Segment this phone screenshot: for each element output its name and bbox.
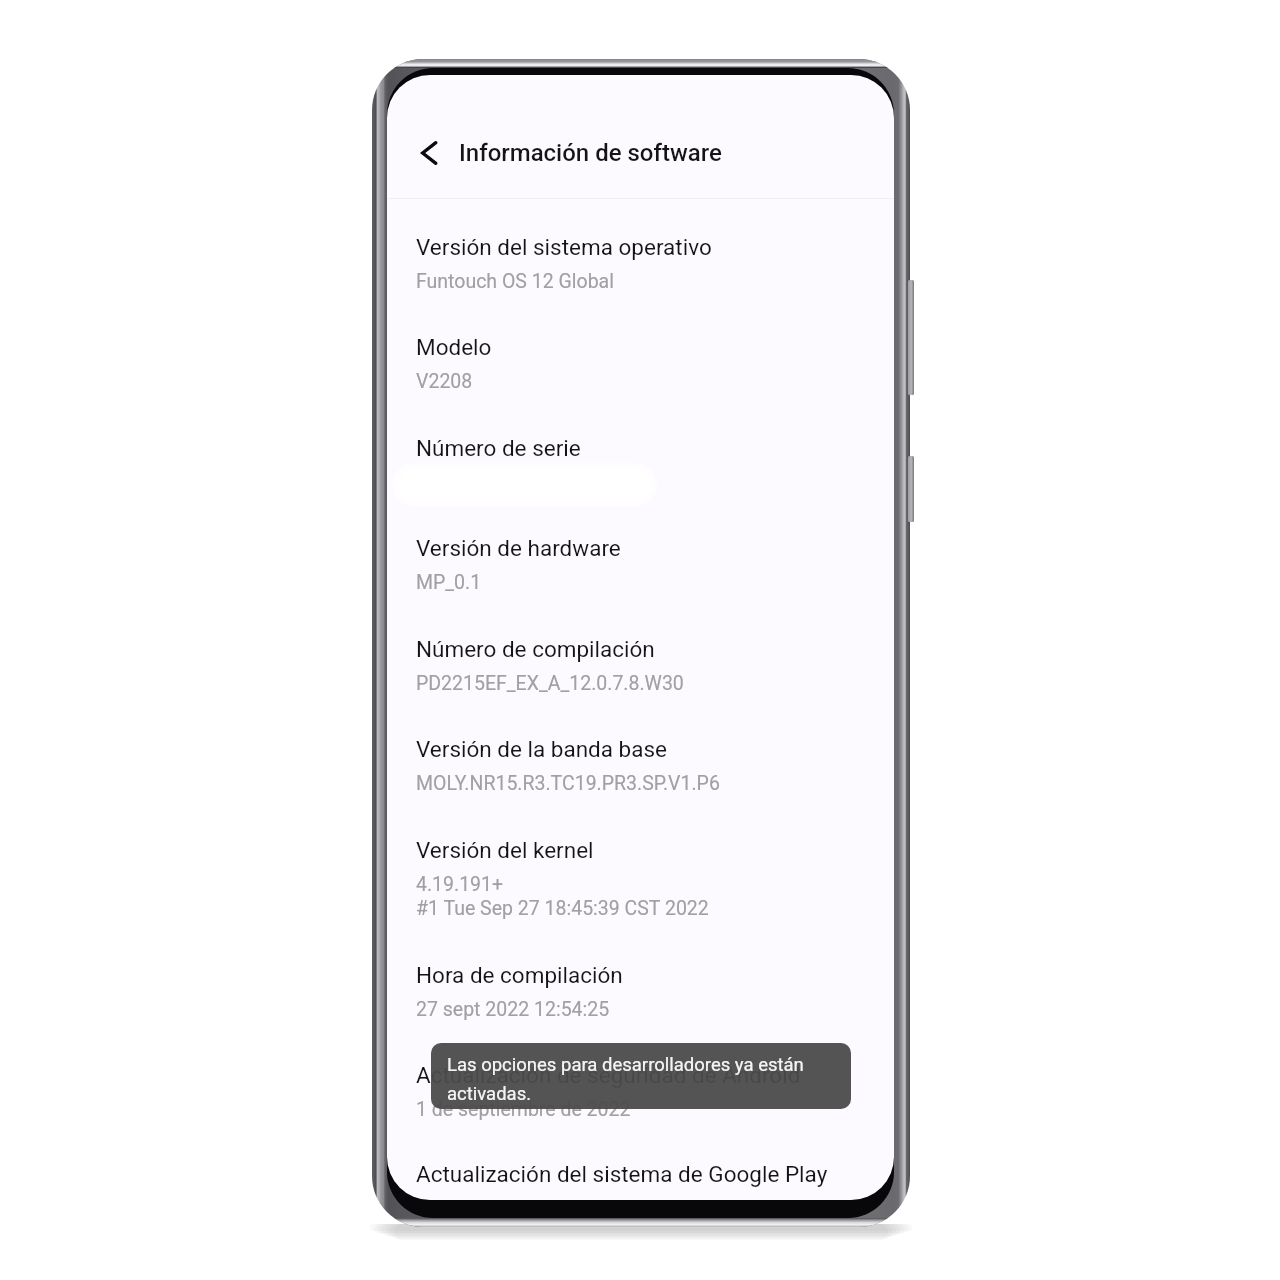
button[interactable]: Versión de la banda base <box>387 715 894 805</box>
button[interactable]: Back <box>408 131 452 175</box>
button[interactable]: Número de compilación <box>387 615 894 705</box>
button[interactable]: Número de serie <box>387 414 894 504</box>
staticText: V2208 <box>416 370 473 393</box>
button[interactable]: Versión del sistema operativo <box>387 213 894 303</box>
staticText: Versión de la banda base <box>416 736 668 762</box>
staticText: Modelo <box>416 334 492 360</box>
staticText: Número de serie <box>416 435 581 461</box>
staticText: Las opciones para desarrolladores ya est… <box>447 1054 804 1104</box>
staticText: #1 Tue Sep 27 18:45:39 CST 2022 <box>416 897 709 920</box>
button[interactable]: Hora de compilación <box>387 941 894 1031</box>
staticText: PD2215EF_EX_A_12.0.7.8.W30 <box>416 672 684 695</box>
button[interactable]: Actualización del sistema de Google Play <box>387 1140 894 1200</box>
staticText: Número de compilación <box>416 636 655 662</box>
staticText: Hora de compilación <box>416 962 623 988</box>
button[interactable]: Versión de hardware <box>387 514 894 604</box>
staticText: Información de software <box>459 139 722 167</box>
button[interactable]: Versión del kernel <box>387 816 894 930</box>
staticText: MP_0.1 <box>416 571 482 594</box>
button[interactable]: Actualización de seguridad de Android <box>387 1041 894 1131</box>
staticText: Versión de hardware <box>416 535 621 561</box>
button[interactable]: Modelo <box>387 313 894 403</box>
staticText: MOLY.NR15.R3.TC19.PR3.SP.V1.P6 <box>416 772 720 795</box>
staticText: 27 sept 2022 12:54:25 <box>416 998 610 1021</box>
staticText: Funtouch OS 12 Global <box>416 270 614 293</box>
staticText: 4.19.191+ <box>416 873 504 896</box>
staticText: Versión del kernel <box>416 837 594 863</box>
staticText: Versión del sistema operativo <box>416 234 712 260</box>
staticText: 1 de septiembre de 2022 <box>416 1098 631 1121</box>
staticText: Actualización de seguridad de Android <box>416 1062 801 1088</box>
staticText: Actualización del sistema de Google Play <box>416 1161 828 1187</box>
